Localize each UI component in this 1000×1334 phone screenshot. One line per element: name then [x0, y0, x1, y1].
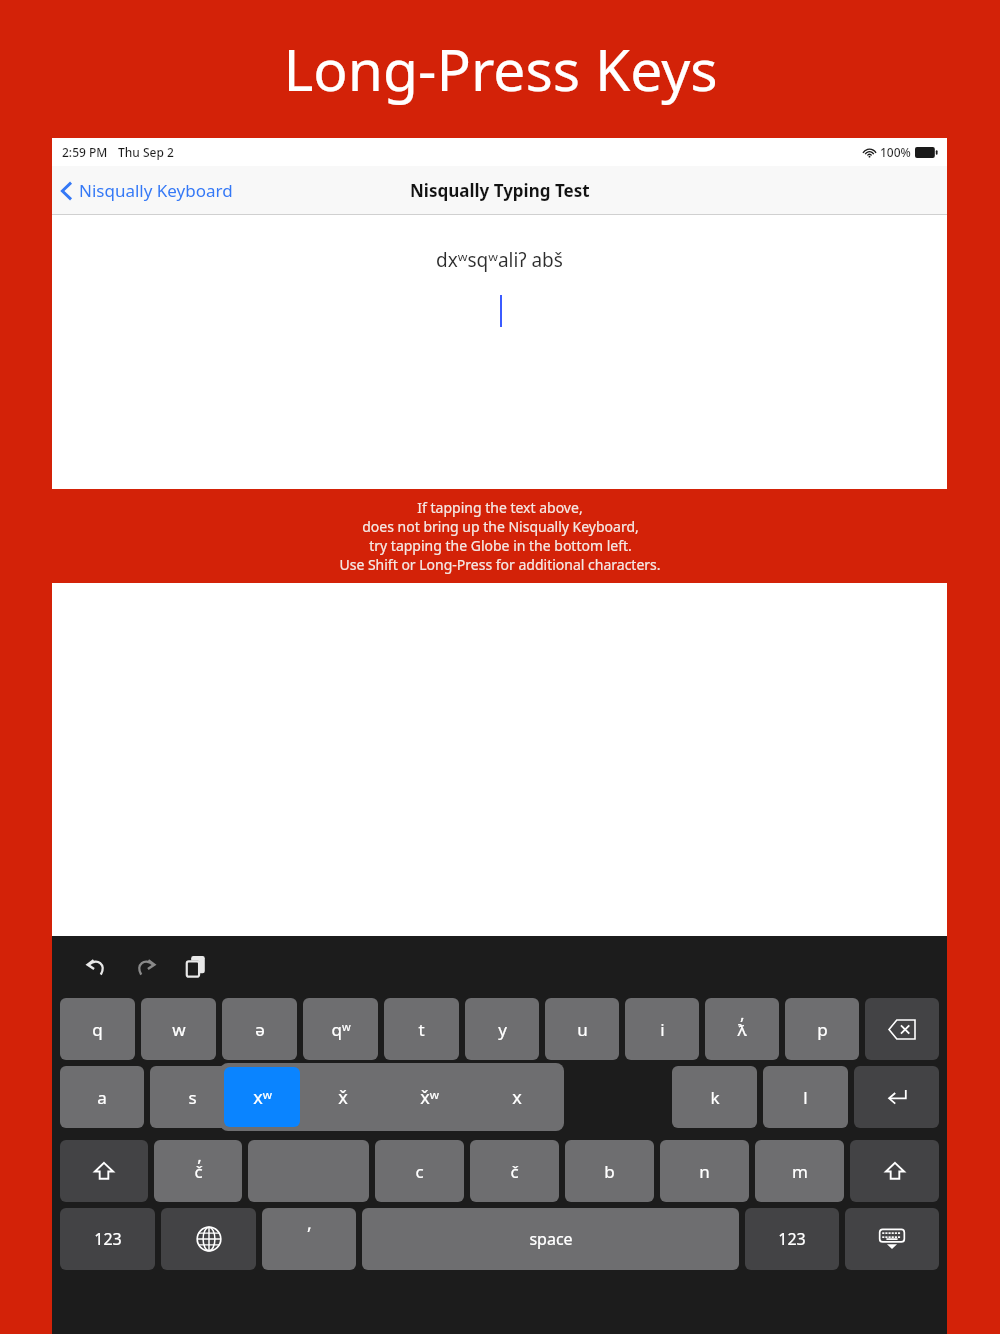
staticText: Thu Sep 2 — [118, 144, 174, 160]
staticText: 123 — [778, 1228, 806, 1250]
staticText: Nisqually Keyboard — [79, 179, 233, 202]
button[interactable]: a — [60, 1066, 144, 1128]
staticText: m — [792, 1160, 808, 1183]
staticText: xʷ — [253, 1085, 272, 1110]
button[interactable]: Dismiss keyboard — [845, 1208, 939, 1270]
staticText: 100% — [880, 144, 911, 160]
staticText: x̌ — [338, 1085, 348, 1110]
button[interactable]: l — [763, 1066, 848, 1128]
button[interactable]: ƛ̓ — [705, 998, 779, 1060]
staticText: s — [188, 1086, 197, 1109]
button[interactable]: space — [362, 1208, 739, 1270]
button[interactable]: q — [60, 998, 135, 1060]
button[interactable]: t — [384, 998, 459, 1060]
button[interactable]: y — [465, 998, 539, 1060]
button[interactable]: c — [375, 1140, 464, 1202]
button[interactable]: p — [785, 998, 859, 1060]
button[interactable]: w — [141, 998, 216, 1060]
button[interactable]: dxʷsqʷaliʔ abš — [52, 215, 947, 489]
staticText: x — [512, 1085, 522, 1110]
staticText: t — [418, 1018, 425, 1041]
staticText: x̌ʷ — [420, 1085, 439, 1110]
staticText: 2:59 PM — [62, 144, 108, 160]
button[interactable]: n — [660, 1140, 749, 1202]
staticText: ə — [255, 1018, 265, 1041]
staticText: Use Shift or Long-Press for additional c… — [339, 555, 661, 574]
staticText: č — [510, 1160, 519, 1183]
staticText: does not bring up the Nisqually Keyboard… — [362, 517, 639, 536]
button[interactable]: m — [755, 1140, 844, 1202]
button[interactable]: č — [470, 1140, 559, 1202]
button[interactable]: Return — [854, 1066, 939, 1128]
button[interactable]: u — [545, 998, 619, 1060]
staticText: a — [97, 1086, 107, 1109]
staticText: č̓ — [194, 1160, 203, 1183]
button[interactable]: x̌ʷ — [386, 1067, 473, 1127]
staticText: qʷ — [331, 1018, 351, 1041]
button[interactable]: xʷ — [224, 1067, 300, 1127]
button[interactable]: Nisqually Keyboard — [60, 179, 233, 202]
button[interactable]: k — [672, 1066, 757, 1128]
staticText: l — [803, 1086, 808, 1109]
button[interactable]: b — [565, 1140, 654, 1202]
staticText: ƛ̓ — [737, 1018, 747, 1041]
staticText: try tapping the Globe in the bottom left… — [369, 536, 632, 555]
button[interactable]: Blank key — [248, 1140, 369, 1202]
staticText: Long-Press Keys — [283, 30, 718, 108]
staticText: p — [817, 1018, 828, 1041]
staticText: w — [172, 1018, 186, 1041]
staticText: c — [415, 1160, 424, 1183]
button[interactable]: 123 — [745, 1208, 839, 1270]
button[interactable]: ʼ — [262, 1208, 356, 1270]
button[interactable]: qʷ — [303, 998, 378, 1060]
staticText: dxʷsqʷaliʔ abš — [436, 247, 563, 273]
button[interactable]: x — [473, 1067, 560, 1127]
staticText: u — [577, 1018, 588, 1041]
staticText: Nisqually Typing Test — [410, 179, 590, 202]
staticText: n — [699, 1160, 710, 1183]
button[interactable]: Undo — [74, 945, 118, 989]
button[interactable]: 123 — [60, 1208, 155, 1270]
button[interactable]: Redo — [124, 945, 168, 989]
staticText: 123 — [94, 1228, 122, 1250]
button[interactable]: s — [150, 1066, 235, 1128]
staticText: b — [604, 1160, 615, 1183]
staticText: q — [92, 1018, 103, 1041]
staticText: i — [660, 1018, 665, 1041]
button[interactable]: x̌ — [300, 1067, 386, 1127]
button[interactable]: Switch keyboard (Globe) — [161, 1208, 256, 1270]
staticText: If tapping the text above, — [417, 498, 583, 517]
button[interactable]: i — [625, 998, 699, 1060]
staticText: y — [498, 1018, 507, 1041]
button[interactable]: ə — [222, 998, 297, 1060]
staticText: space — [529, 1228, 573, 1250]
staticText: k — [710, 1086, 720, 1109]
button[interactable]: Shift — [850, 1140, 939, 1202]
button[interactable]: Paste — [174, 945, 218, 989]
button[interactable]: Shift — [60, 1140, 148, 1202]
button[interactable]: č̓ — [154, 1140, 242, 1202]
staticText: ʼ — [307, 1222, 311, 1247]
button[interactable]: Backspace — [865, 998, 939, 1060]
